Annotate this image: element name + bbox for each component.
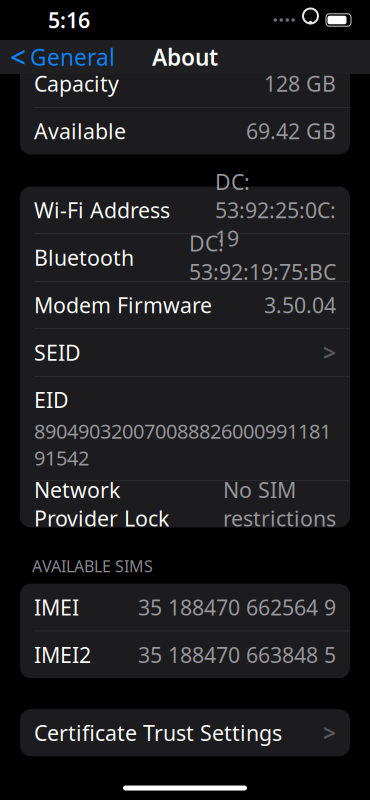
button[interactable]: Network Provider Lock — [20, 480, 350, 527]
button[interactable]: SEID — [20, 329, 350, 376]
button[interactable]: Available — [20, 107, 350, 154]
staticText: AVAILABLE SIMS — [32, 555, 153, 577]
staticText: > — [323, 718, 336, 748]
staticText: Bluetooth — [34, 243, 134, 272]
staticText: EID — [34, 385, 69, 414]
staticText: 5:16 — [48, 6, 90, 34]
button[interactable]: Certificate Trust Settings — [20, 709, 350, 756]
staticText: Wi-Fi Address — [34, 196, 170, 224]
button[interactable]: Modem Firmware — [20, 281, 350, 328]
staticText: 69.42 GB — [246, 117, 336, 145]
button[interactable]: Capacity — [20, 60, 350, 107]
staticText: About — [152, 42, 218, 72]
staticText: SEID — [34, 338, 81, 367]
button[interactable]: < — [0, 40, 125, 74]
staticText: Modem Firmware — [34, 291, 212, 319]
staticText: 128 GB — [264, 69, 336, 98]
staticText: > — [323, 337, 336, 367]
button[interactable]: IMEI2 — [20, 631, 350, 678]
staticText: 89049032007008882600099118191542 — [34, 418, 331, 471]
staticText: Available — [34, 117, 126, 145]
staticText: DC:53:92:25:0C:19 — [215, 167, 336, 252]
button[interactable]: Wi-Fi Address — [20, 186, 350, 233]
button[interactable]: IMEI — [20, 584, 350, 631]
staticText: Capacity — [34, 69, 119, 98]
staticText: DC:53:92:19:75:BC — [189, 229, 336, 286]
staticText: General — [30, 42, 115, 72]
button[interactable]: Bluetooth — [20, 234, 350, 281]
button[interactable]: EID — [20, 376, 350, 480]
staticText: Network Provider Lock — [34, 476, 169, 532]
staticText: 35 188470 662564 9 — [138, 593, 336, 621]
staticText: IMEI — [34, 593, 79, 621]
staticText: < — [10, 38, 26, 76]
staticText: Certificate Trust Settings — [34, 718, 282, 747]
staticText: 35 188470 663848 5 — [138, 640, 336, 669]
staticText: No SIM restrictions — [223, 476, 336, 532]
staticText: 3.50.04 — [264, 291, 336, 319]
staticText: IMEI2 — [34, 640, 91, 669]
